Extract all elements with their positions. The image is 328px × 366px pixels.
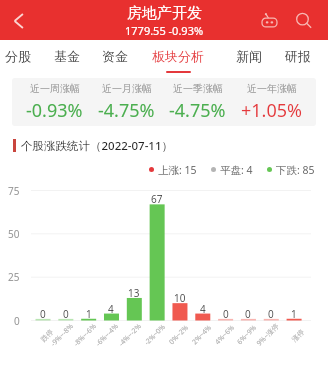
staticText: 平盘: 4 bbox=[220, 163, 253, 175]
staticText: 下跌: 85 bbox=[276, 163, 315, 175]
button[interactable]: 研报 bbox=[282, 40, 314, 74]
staticText: 2%~4% bbox=[190, 323, 214, 347]
staticText: 4%~6% bbox=[213, 323, 237, 347]
button[interactable]: 新闻 bbox=[233, 40, 265, 74]
staticText: 4 bbox=[200, 302, 206, 316]
staticText: 6%~9% bbox=[235, 323, 259, 347]
staticText: +1.05% bbox=[241, 98, 302, 123]
button[interactable]: 平盘: 4 bbox=[211, 163, 253, 175]
staticText: 分股 bbox=[5, 48, 31, 64]
staticText: 25 bbox=[8, 270, 20, 284]
staticText: -2%~0% bbox=[142, 322, 168, 348]
staticText: 1 bbox=[291, 307, 297, 321]
staticText: 75 bbox=[8, 184, 20, 198]
staticText: 个股涨跌统计（2022-07-11） bbox=[21, 138, 174, 153]
staticText: 0 bbox=[63, 307, 69, 321]
staticText: -0.93% bbox=[26, 98, 83, 123]
staticText: 跌停 bbox=[39, 327, 55, 344]
staticText: 近一年涨幅 bbox=[247, 82, 297, 95]
button[interactable]: AI assistant bbox=[254, 5, 284, 35]
staticText: 9%~涨停 bbox=[255, 322, 281, 348]
staticText: 10 bbox=[174, 291, 186, 305]
button[interactable]: Back bbox=[0, 0, 40, 40]
staticText: 4 bbox=[108, 302, 114, 316]
staticText: 新闻 bbox=[236, 48, 262, 64]
staticText: 近一月涨幅 bbox=[102, 82, 152, 95]
staticText: 0 bbox=[223, 307, 229, 321]
staticText: 13 bbox=[128, 286, 140, 300]
staticText: 涨停 bbox=[290, 327, 306, 344]
button[interactable]: 上涨: 15 bbox=[149, 163, 197, 175]
staticText: 房地产开发 bbox=[127, 4, 202, 23]
staticText: 上涨: 15 bbox=[158, 163, 197, 175]
staticText: 基金 bbox=[54, 48, 80, 64]
staticText: 1 bbox=[86, 307, 92, 321]
button[interactable]: 分股 bbox=[2, 40, 34, 74]
staticText: -6%~-4% bbox=[94, 321, 121, 349]
staticText: 0 bbox=[14, 314, 20, 328]
button[interactable]: Search bbox=[288, 5, 318, 35]
staticText: 板块分析 bbox=[152, 48, 204, 64]
staticText: -4.75% bbox=[169, 98, 226, 123]
staticText: 0 bbox=[245, 307, 251, 321]
button[interactable]: 近一季涨幅 bbox=[169, 82, 226, 123]
staticText: -9%~-8% bbox=[49, 321, 76, 349]
staticText: -4%~-2% bbox=[117, 321, 144, 349]
staticText: 67 bbox=[151, 192, 163, 206]
staticText: 0 bbox=[40, 307, 46, 321]
staticText: 0%~2% bbox=[167, 323, 191, 347]
button[interactable]: 近一月涨幅 bbox=[98, 82, 155, 123]
staticText: 近一周涨幅 bbox=[30, 82, 80, 95]
staticText: 50 bbox=[8, 227, 20, 241]
button[interactable]: 下跌: 85 bbox=[267, 163, 315, 175]
button[interactable]: 资金 bbox=[99, 40, 131, 74]
staticText: 0 bbox=[268, 307, 274, 321]
staticText: 1779.55 -0.93% bbox=[125, 23, 204, 38]
staticText: 资金 bbox=[102, 48, 128, 64]
staticText: 研报 bbox=[285, 48, 311, 64]
button[interactable]: 近一年涨幅 bbox=[241, 82, 302, 123]
staticText: -8%~-6% bbox=[72, 321, 99, 349]
staticText: 近一季涨幅 bbox=[173, 82, 223, 95]
staticText: -4.75% bbox=[98, 98, 155, 123]
button[interactable]: 板块分析 bbox=[151, 40, 205, 74]
button[interactable]: 基金 bbox=[51, 40, 83, 74]
button[interactable]: 近一周涨幅 bbox=[26, 82, 83, 123]
